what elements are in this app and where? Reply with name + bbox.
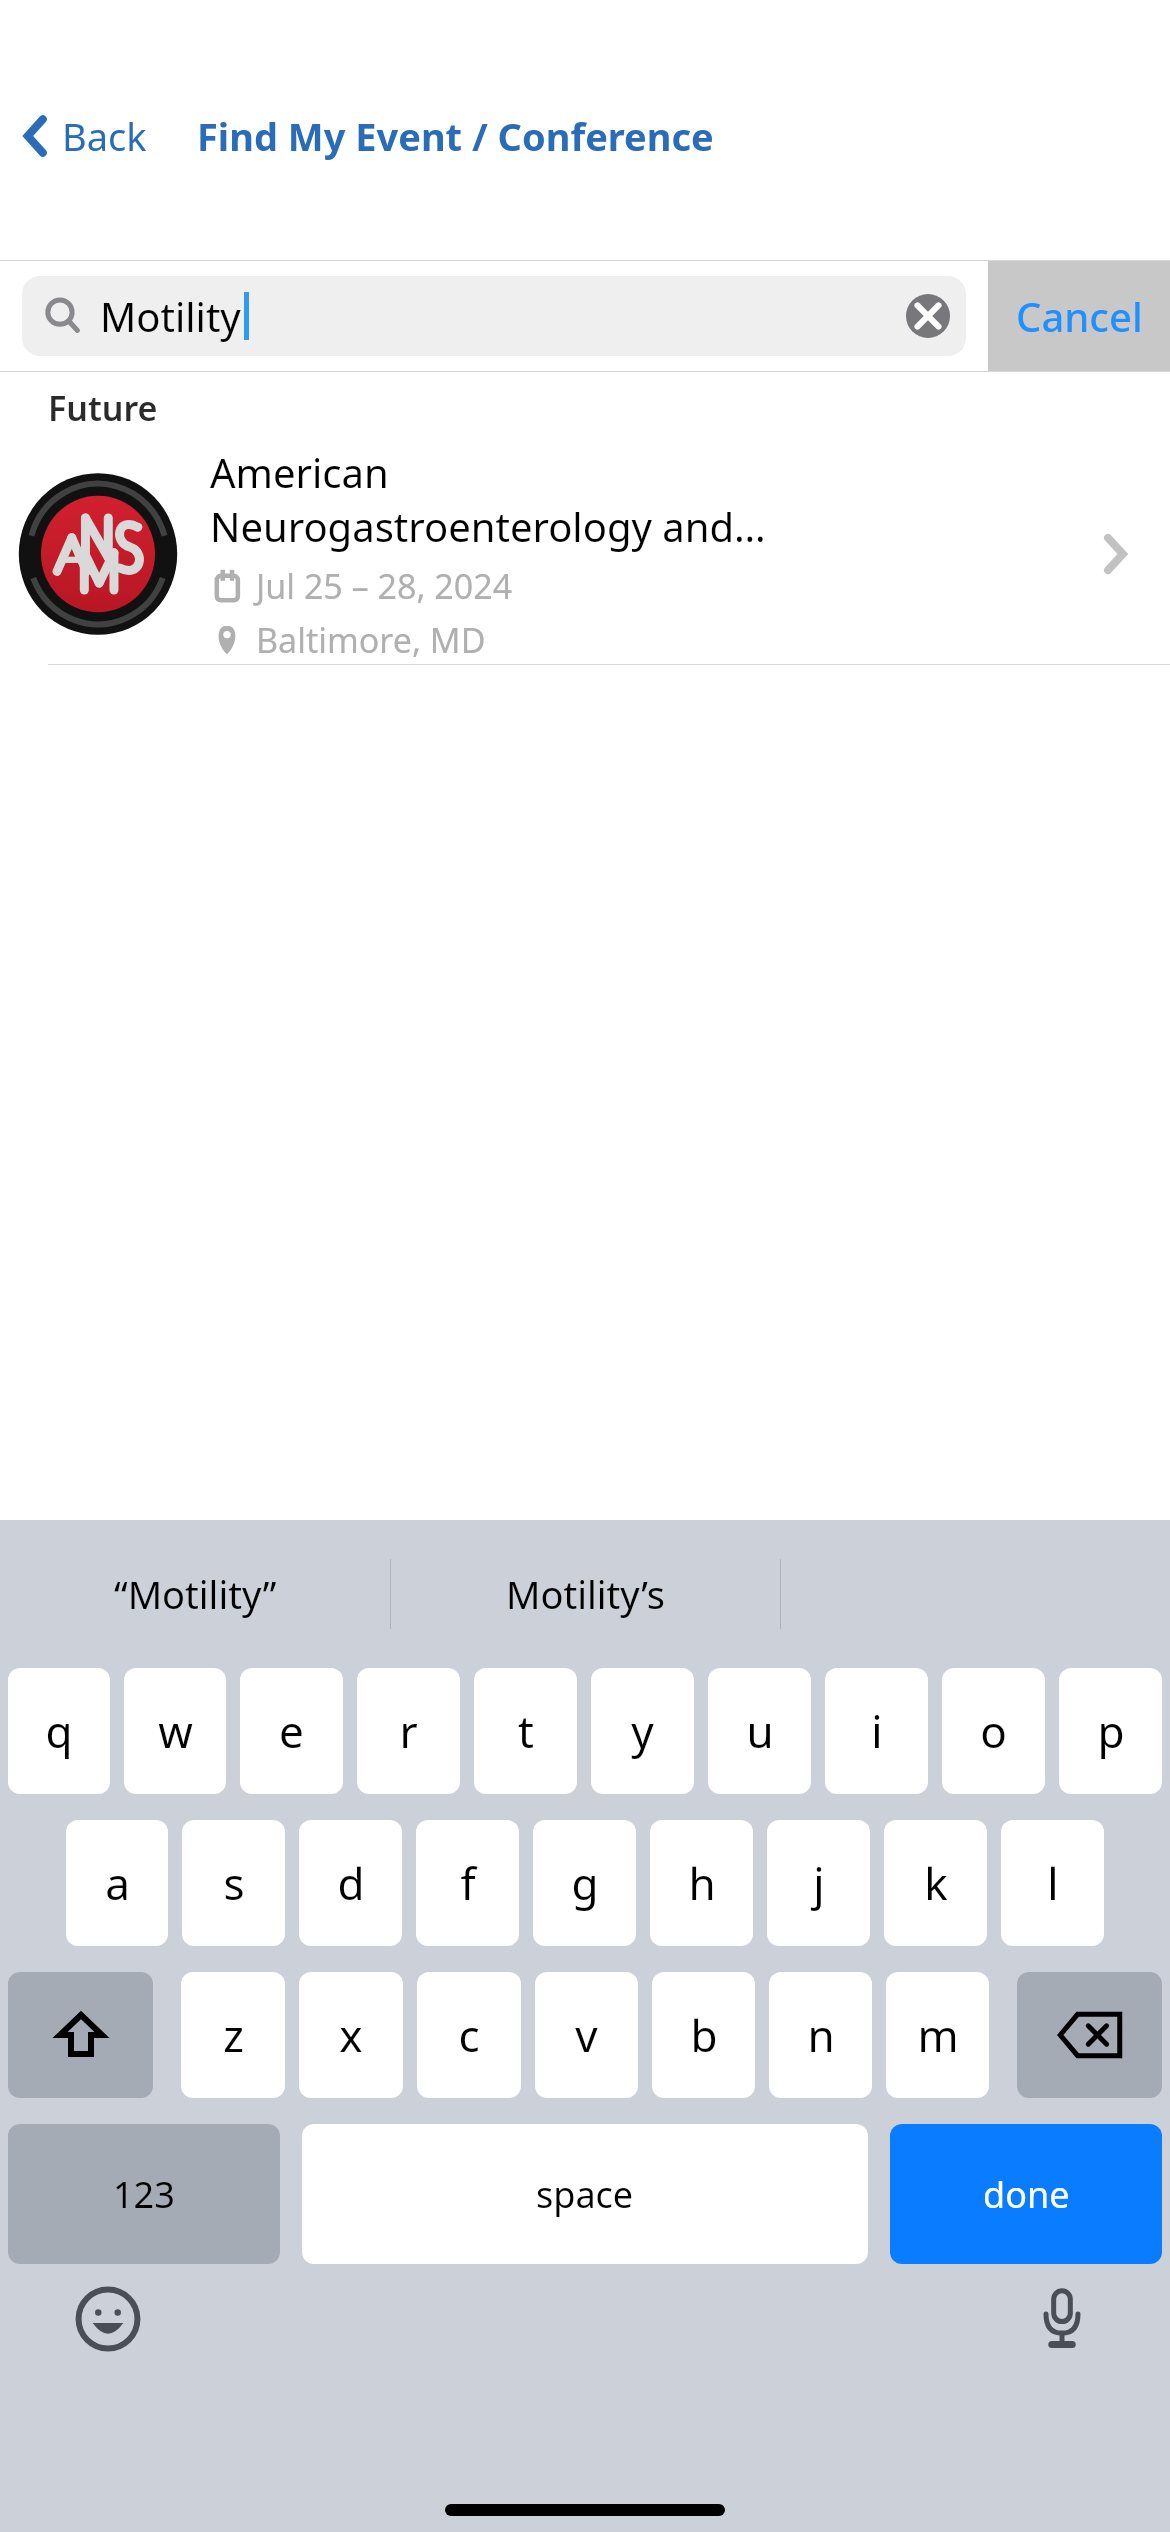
button[interactable]: d bbox=[299, 1820, 402, 1946]
button[interactable]: a bbox=[66, 1820, 168, 1946]
staticText: h bbox=[688, 1853, 716, 1913]
button[interactable]: n bbox=[769, 1972, 872, 2098]
button[interactable]: Dictation bbox=[1014, 2278, 1110, 2360]
staticText: Back bbox=[62, 110, 147, 162]
staticText: Neurogastroenterology and… bbox=[210, 499, 766, 553]
staticText: c bbox=[458, 2005, 480, 2065]
staticText: p bbox=[1097, 1701, 1125, 1761]
button[interactable]: y bbox=[591, 1668, 694, 1794]
button[interactable]: u bbox=[708, 1668, 811, 1794]
button[interactable]: Back bbox=[0, 100, 157, 172]
staticText: “Motility” bbox=[114, 1568, 277, 1620]
button[interactable]: Clear text bbox=[898, 286, 958, 346]
button[interactable]: “Motility” bbox=[0, 1520, 390, 1668]
staticText: a bbox=[105, 1853, 130, 1913]
staticText: 123 bbox=[113, 2170, 175, 2219]
staticText: i bbox=[871, 1701, 883, 1761]
staticText: done bbox=[983, 2170, 1070, 2219]
button[interactable]: m bbox=[886, 1972, 989, 2098]
staticText: m bbox=[917, 2005, 959, 2065]
staticText: k bbox=[924, 1853, 948, 1913]
staticText: t bbox=[518, 1701, 534, 1761]
button[interactable]: j bbox=[767, 1820, 870, 1946]
staticText: Future bbox=[48, 385, 158, 431]
staticText: u bbox=[746, 1701, 774, 1761]
button[interactable]: Backspace bbox=[1017, 1972, 1162, 2098]
staticText: j bbox=[813, 1853, 825, 1913]
button[interactable]: l bbox=[1001, 1820, 1104, 1946]
staticText: w bbox=[158, 1701, 193, 1761]
staticText: x bbox=[339, 2005, 363, 2065]
button[interactable]: i bbox=[825, 1668, 928, 1794]
button[interactable]: h bbox=[650, 1820, 753, 1946]
button[interactable]: p bbox=[1059, 1668, 1162, 1794]
button[interactable]: q bbox=[8, 1668, 110, 1794]
button[interactable]: g bbox=[533, 1820, 636, 1946]
button[interactable]: Motility bbox=[22, 276, 966, 356]
button[interactable]: o bbox=[942, 1668, 1045, 1794]
staticText: s bbox=[223, 1853, 245, 1913]
button[interactable]: Shift bbox=[8, 1972, 153, 2098]
button[interactable]: space bbox=[302, 2124, 868, 2264]
staticText: n bbox=[807, 2005, 835, 2065]
staticText: Find My Event / Conference bbox=[197, 110, 714, 162]
button[interactable]: f bbox=[416, 1820, 519, 1946]
staticText: e bbox=[279, 1701, 304, 1761]
button[interactable]: s bbox=[182, 1820, 285, 1946]
staticText: Baltimore, MD bbox=[256, 617, 486, 663]
button[interactable]: done bbox=[890, 2124, 1162, 2264]
staticText: r bbox=[399, 1701, 418, 1761]
button[interactable]: e bbox=[240, 1668, 343, 1794]
staticText: q bbox=[45, 1701, 73, 1761]
staticText: Cancel bbox=[1016, 289, 1143, 343]
staticText: y bbox=[631, 1701, 654, 1761]
button[interactable]: x bbox=[299, 1972, 403, 2098]
button[interactable]: r bbox=[357, 1668, 460, 1794]
button[interactable]: z bbox=[181, 1972, 285, 2098]
staticText: American bbox=[210, 445, 389, 499]
button[interactable]: v bbox=[535, 1972, 638, 2098]
button[interactable]: c bbox=[417, 1972, 521, 2098]
staticText: l bbox=[1047, 1853, 1059, 1913]
button[interactable]: b bbox=[652, 1972, 755, 2098]
staticText: f bbox=[460, 1853, 476, 1913]
staticText: g bbox=[571, 1853, 599, 1913]
staticText: d bbox=[337, 1853, 365, 1913]
button[interactable]: American bbox=[0, 444, 1170, 664]
button[interactable]: Motility’s bbox=[391, 1520, 780, 1668]
staticText: Motility’s bbox=[506, 1568, 665, 1620]
button[interactable]: 123 bbox=[8, 2124, 280, 2264]
button[interactable]: w bbox=[124, 1668, 226, 1794]
staticText: Jul 25 – 28, 2024 bbox=[256, 563, 513, 609]
button[interactable]: Cancel bbox=[988, 261, 1170, 371]
button[interactable]: k bbox=[884, 1820, 987, 1946]
staticText: space bbox=[536, 2170, 634, 2219]
staticText: Motility bbox=[100, 289, 241, 343]
staticText: z bbox=[223, 2005, 244, 2065]
staticText: b bbox=[690, 2005, 718, 2065]
staticText: o bbox=[980, 1701, 1007, 1761]
button[interactable]: t bbox=[474, 1668, 577, 1794]
button[interactable]: Emoji keyboard bbox=[60, 2278, 156, 2360]
staticText: v bbox=[575, 2005, 598, 2065]
